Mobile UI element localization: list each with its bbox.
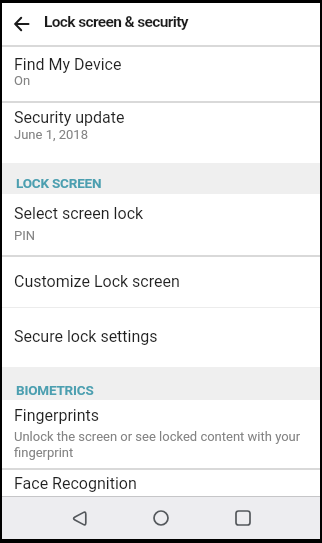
staticText: Secure lock settings bbox=[14, 327, 158, 346]
staticText: Select screen lock bbox=[14, 204, 144, 223]
button[interactable] bbox=[120, 497, 202, 539]
staticText: LOCK SCREEN bbox=[16, 175, 102, 191]
staticText: On bbox=[14, 73, 31, 88]
button[interactable] bbox=[202, 497, 284, 539]
staticText: BIOMETRICS bbox=[16, 382, 94, 398]
button[interactable]: Customize Lock screen bbox=[2, 257, 320, 307]
button[interactable]: Security update bbox=[2, 103, 320, 163]
button[interactable]: Face Recognition bbox=[2, 470, 320, 496]
staticText: Security update bbox=[14, 108, 125, 127]
staticText: June 1, 2018 bbox=[14, 127, 88, 142]
staticText: Find My Device bbox=[14, 55, 122, 74]
button[interactable]: Find My Device bbox=[2, 47, 320, 101]
button[interactable]: Fingerprints bbox=[2, 400, 320, 468]
staticText: Unlock the screen or see locked content … bbox=[14, 429, 308, 460]
button[interactable]: Select screen lock bbox=[2, 194, 320, 255]
staticText: PIN bbox=[14, 228, 36, 243]
staticText: Lock screen & security bbox=[44, 13, 188, 31]
staticText: Face Recognition bbox=[14, 474, 137, 493]
staticText: Fingerprints bbox=[14, 406, 100, 425]
button[interactable]: Secure lock settings bbox=[2, 308, 320, 367]
button[interactable] bbox=[2, 3, 42, 45]
button[interactable] bbox=[38, 497, 120, 539]
staticText: Customize Lock screen bbox=[14, 272, 180, 291]
